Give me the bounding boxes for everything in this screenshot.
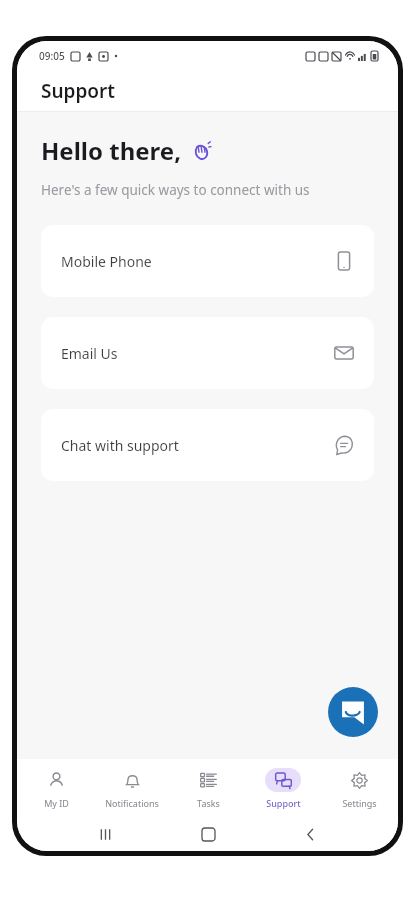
button[interactable]: Settings [322, 759, 396, 817]
button[interactable]: Notifications [95, 759, 169, 817]
button[interactable]: Tasks [171, 759, 245, 817]
button[interactable]: Open chat [328, 687, 378, 737]
staticText: Support [41, 78, 116, 104]
staticText: Settings [342, 797, 377, 809]
button[interactable]: Home [193, 819, 223, 849]
staticText: Chat with support [61, 436, 179, 455]
button[interactable]: My ID [19, 759, 93, 817]
staticText: Hello there, [41, 134, 181, 167]
staticText: Support [266, 797, 301, 809]
staticText: My ID [44, 797, 69, 809]
button[interactable]: Support [246, 759, 320, 817]
button[interactable]: Mobile Phone [41, 225, 374, 297]
staticText: Here's a few quick ways to connect with … [41, 181, 310, 199]
staticText: Mobile Phone [61, 252, 152, 271]
staticText: Email Us [61, 344, 118, 363]
staticText: Tasks [197, 797, 220, 809]
button[interactable]: Email Us [41, 317, 374, 389]
button[interactable]: Back [295, 819, 325, 849]
staticText: Notifications [105, 797, 159, 809]
button[interactable]: Chat with support [41, 409, 374, 481]
staticText: 09:05 [39, 49, 65, 63]
button[interactable]: Recent apps [90, 819, 120, 849]
